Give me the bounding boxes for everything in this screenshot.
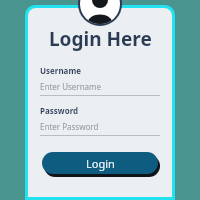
- other: Profile avatar: [80, 0, 120, 24]
- staticText: Username: [40, 65, 81, 76]
- button[interactable]: Username: [40, 65, 160, 96]
- staticText: Password: [40, 105, 79, 116]
- staticText: Enter Username: [40, 81, 102, 92]
- button[interactable]: Login: [42, 152, 158, 174]
- button[interactable]: Password: [40, 105, 160, 136]
- staticText: Login: [86, 156, 115, 171]
- staticText: Login Here: [49, 26, 152, 52]
- staticText: Enter Password: [40, 121, 99, 132]
